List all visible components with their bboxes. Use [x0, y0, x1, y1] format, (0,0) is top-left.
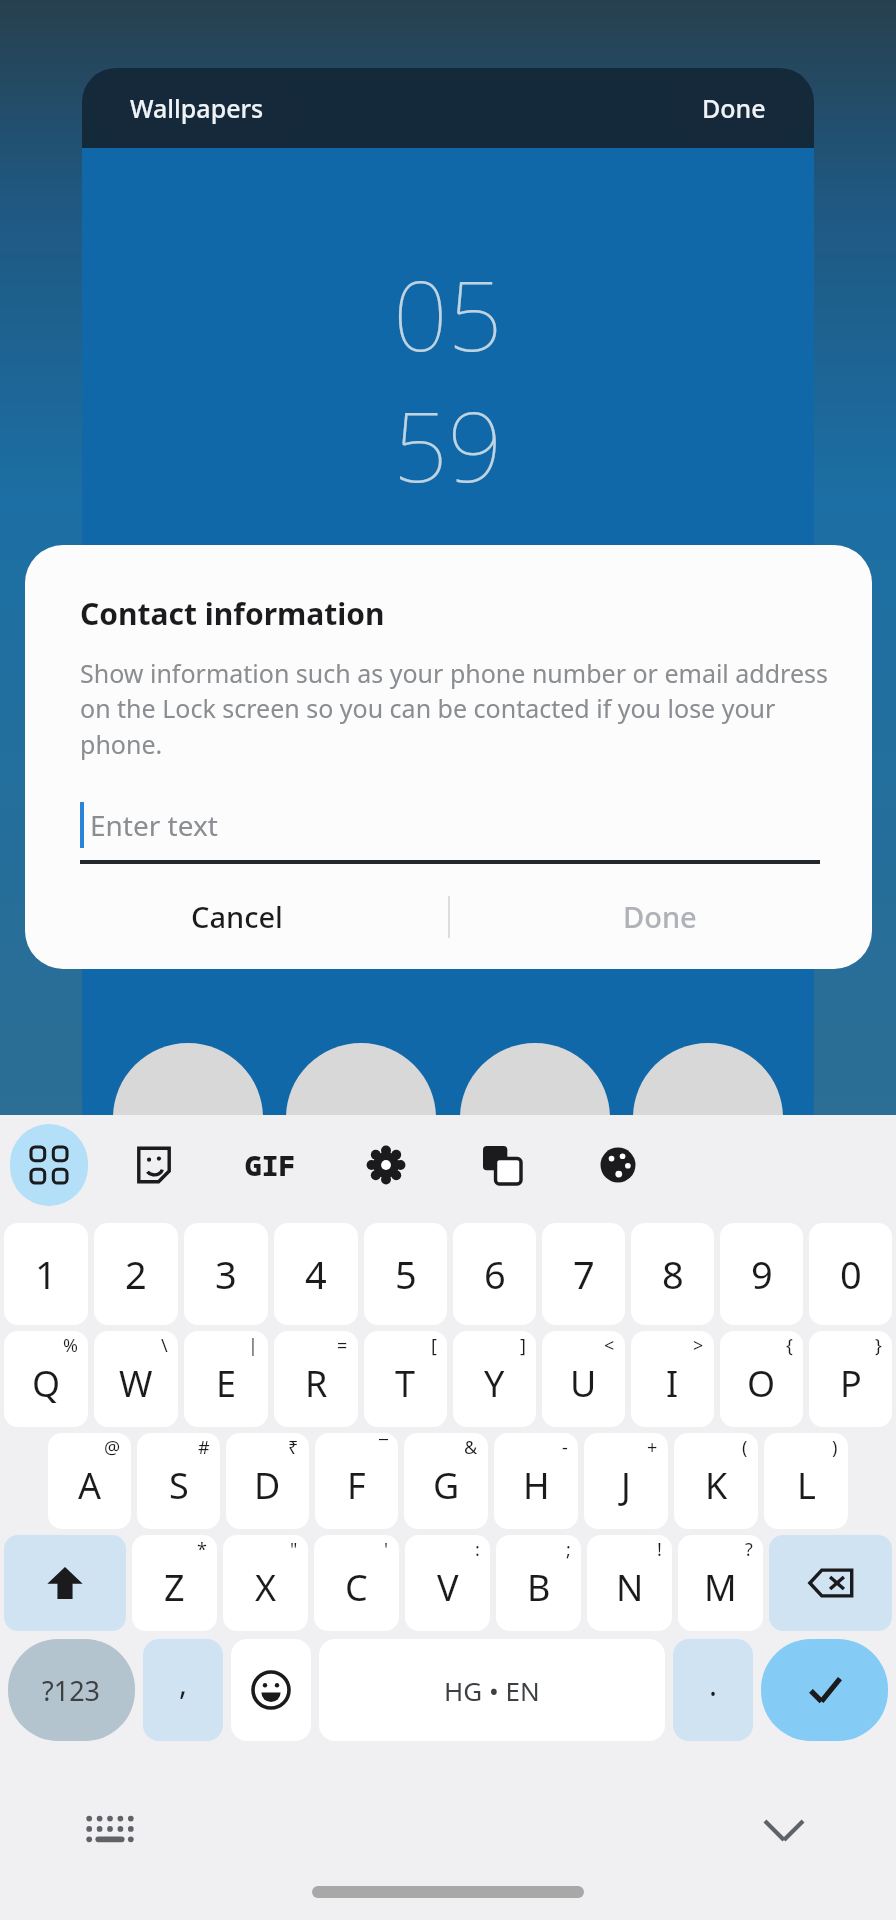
button[interactable]: ' [314, 1535, 399, 1631]
button[interactable]: ? [678, 1535, 763, 1631]
button[interactable]: Theme [582, 1129, 654, 1201]
button[interactable]: 1 [4, 1223, 88, 1325]
staticText: ! [657, 1537, 662, 1562]
button[interactable]: 2 [94, 1223, 178, 1325]
staticText: 9 [751, 1248, 773, 1300]
staticText: Cancel [191, 897, 283, 936]
button[interactable]: . [673, 1639, 753, 1741]
button[interactable]: 0 [809, 1223, 892, 1325]
button[interactable]: * [132, 1535, 217, 1631]
button[interactable]: ] [453, 1331, 536, 1427]
staticText: > [693, 1333, 704, 1358]
staticText: , [179, 1663, 188, 1704]
button[interactable]: Switch keyboard [80, 1800, 140, 1860]
button[interactable]: Wallpapers [100, 77, 294, 139]
button[interactable]: Translate [466, 1129, 538, 1201]
staticText: Wallpapers [130, 91, 264, 125]
staticText: 8 [662, 1248, 684, 1300]
staticText: 3 [215, 1248, 237, 1300]
staticText: . [709, 1664, 718, 1705]
button[interactable]: 3 [184, 1223, 268, 1325]
button[interactable]: Stickers [118, 1129, 190, 1201]
button[interactable]: Enter [761, 1639, 888, 1741]
staticText: \ [161, 1333, 168, 1358]
button[interactable]: ( [674, 1433, 758, 1529]
button[interactable]: Hide keyboard [752, 1798, 816, 1862]
staticText: Done [702, 91, 766, 125]
button[interactable]: Cancel [25, 864, 448, 969]
staticText: # [198, 1435, 210, 1460]
staticText: ¯ [379, 1435, 388, 1460]
staticText: - [562, 1435, 568, 1460]
staticText: } [875, 1333, 882, 1358]
button[interactable]: [ [364, 1331, 447, 1427]
button[interactable]: Enter text [80, 802, 820, 864]
staticText: : [475, 1537, 480, 1562]
button[interactable]: Backspace [769, 1535, 892, 1631]
button[interactable]: " [223, 1535, 308, 1631]
button[interactable]: ! [587, 1535, 672, 1631]
staticText: ( [742, 1435, 748, 1460]
staticText: < [604, 1333, 615, 1358]
staticText: 2 [125, 1248, 147, 1300]
button[interactable]: 7 [542, 1223, 625, 1325]
button[interactable]: Emoji [231, 1639, 311, 1741]
staticText: J [621, 1461, 631, 1510]
button[interactable]: ?123 [8, 1639, 135, 1741]
button[interactable]: Settings [350, 1129, 422, 1201]
button[interactable]: ) [764, 1433, 848, 1529]
staticText: ₹ [288, 1435, 299, 1460]
button[interactable]: 6 [453, 1223, 536, 1325]
button[interactable]: Shift [4, 1535, 126, 1631]
staticText: G [433, 1461, 460, 1510]
staticText: Contact information [80, 593, 385, 634]
staticText: Z [164, 1563, 185, 1612]
staticText: F [347, 1461, 366, 1510]
button[interactable]: # [137, 1433, 220, 1529]
button[interactable]: Done [672, 77, 796, 139]
staticText: 7 [573, 1248, 595, 1300]
staticText: I [666, 1359, 679, 1408]
button[interactable]: = [274, 1331, 358, 1427]
button[interactable]: Done [448, 864, 872, 969]
button[interactable]: 5 [364, 1223, 447, 1325]
button[interactable]: ; [496, 1535, 581, 1631]
staticText: L [797, 1461, 816, 1510]
button[interactable]: 8 [631, 1223, 714, 1325]
staticText: Show information such as your phone numb… [80, 656, 834, 762]
button[interactable]: & [404, 1433, 488, 1529]
button[interactable]: @ [48, 1433, 131, 1529]
button[interactable]: GIF [234, 1129, 306, 1201]
button[interactable]: HG • EN [319, 1639, 665, 1741]
button[interactable]: % [4, 1331, 88, 1427]
staticText: N [616, 1563, 644, 1612]
button[interactable]: Keyboard modes [10, 1124, 88, 1206]
button[interactable]: } [809, 1331, 892, 1427]
button[interactable]: 9 [720, 1223, 803, 1325]
staticText: R [305, 1359, 328, 1408]
staticText: M [704, 1563, 737, 1612]
staticText: Q [32, 1359, 61, 1408]
button[interactable]: < [542, 1331, 625, 1427]
staticText: P [840, 1359, 862, 1408]
staticText: O [747, 1359, 776, 1408]
staticText: 5 [395, 1248, 417, 1300]
button[interactable]: { [720, 1331, 803, 1427]
button[interactable]: , [143, 1639, 223, 1741]
staticText: V [437, 1563, 459, 1612]
button[interactable]: 4 [274, 1223, 358, 1325]
button[interactable]: ₹ [226, 1433, 309, 1529]
button[interactable]: - [494, 1433, 578, 1529]
staticText: ) [832, 1435, 838, 1460]
button[interactable]: \ [94, 1331, 178, 1427]
button[interactable]: | [184, 1331, 268, 1427]
button[interactable]: + [584, 1433, 668, 1529]
staticText: Done [623, 897, 697, 936]
button[interactable]: ¯ [315, 1433, 398, 1529]
staticText: ; [566, 1537, 571, 1562]
staticText: * [197, 1537, 207, 1562]
button[interactable]: : [405, 1535, 490, 1631]
staticText: 6 [484, 1248, 506, 1300]
staticText: D [254, 1461, 281, 1510]
button[interactable]: > [631, 1331, 714, 1427]
